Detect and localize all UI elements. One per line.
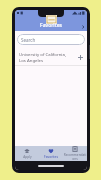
staticText: Favorites [44,155,58,159]
button[interactable]: Add to favorites [76,53,84,61]
staticText: Search [21,37,36,43]
button[interactable]: Recommendations [63,146,87,161]
button[interactable]: University of California, Los Angeles [15,48,87,65]
button[interactable]: Favorites [39,146,63,161]
staticText: Apply [23,155,32,159]
staticText: University of California, Los Angeles [19,51,72,63]
staticText: Recommendations [63,153,87,161]
button[interactable]: More options [80,24,86,30]
button[interactable]: Apply [15,146,39,161]
button[interactable]: Search [17,34,85,45]
staticText: Favorites [40,22,62,29]
